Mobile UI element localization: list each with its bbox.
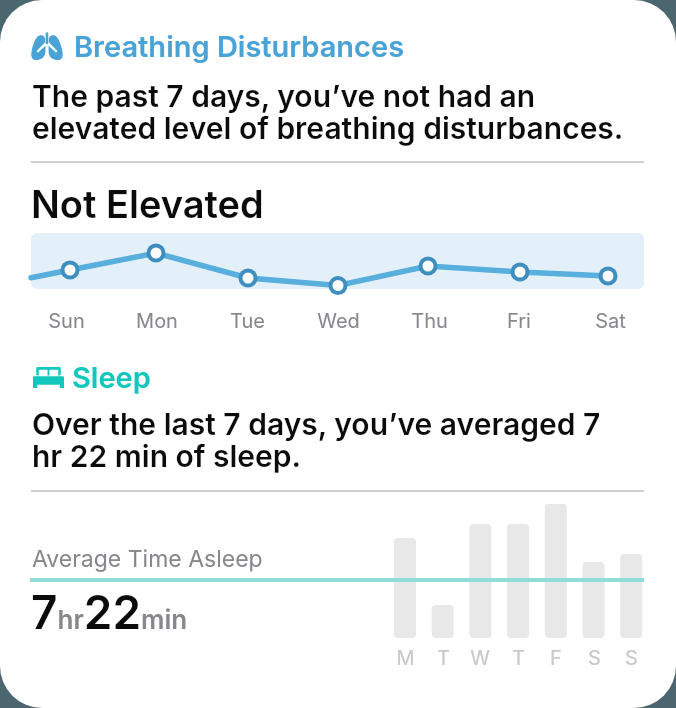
staticText: W <box>470 646 490 670</box>
staticText: Mon <box>136 309 178 333</box>
staticText: S <box>625 646 638 670</box>
staticText: Wed <box>317 309 360 333</box>
staticText: Fri <box>507 309 531 333</box>
staticText: Average Time Asleep <box>32 545 263 573</box>
staticText: Tue <box>230 309 265 333</box>
staticText: Thu <box>411 309 448 333</box>
staticText: Sat <box>595 309 626 333</box>
button[interactable]: Sleep <box>33 360 151 395</box>
other: Sleep <box>33 367 64 388</box>
button[interactable]: Breathing <box>31 29 405 64</box>
staticText: Over the last 7 days, you’ve averaged 7 … <box>32 406 601 474</box>
staticText: The past 7 days, you’ve not had an eleva… <box>32 78 624 146</box>
staticText: Not Elevated <box>31 181 264 227</box>
staticText: F <box>550 646 562 670</box>
staticText: T <box>437 646 450 670</box>
staticText: Sun <box>48 309 85 333</box>
other: Breathing <box>31 33 63 60</box>
staticText: M <box>396 646 415 670</box>
staticText: Sleep <box>72 360 151 395</box>
staticText: Breathing Disturbances <box>74 29 405 64</box>
staticText: T <box>512 646 525 670</box>
staticText: S <box>588 646 601 670</box>
staticText: 7hr22min <box>31 584 188 640</box>
